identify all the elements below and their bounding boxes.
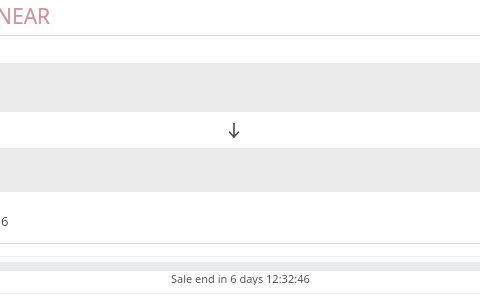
- button[interactable]: Scroll down: [0, 112, 480, 148]
- button[interactable]: NEAR: [0, 0, 480, 35]
- button[interactable]: 6: [0, 192, 480, 243]
- staticText: NEAR: [0, 2, 51, 31]
- other: Scroll down: [227, 123, 241, 137]
- staticText: Sale end in 6 days 12:32:46: [171, 271, 310, 285]
- staticText: 6: [1, 212, 9, 230]
- button[interactable]: Sale end in 6 days 12:32:46: [0, 271, 480, 285]
